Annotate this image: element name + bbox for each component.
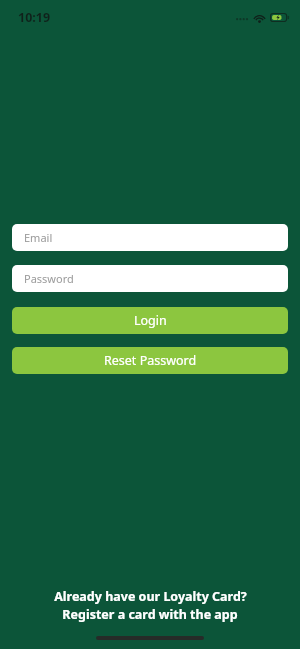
staticText: Email bbox=[24, 230, 53, 245]
button[interactable]: Reset Password bbox=[12, 347, 288, 374]
button[interactable]: Email bbox=[12, 224, 288, 251]
staticText: Login bbox=[134, 312, 167, 329]
staticText: 10:19 bbox=[18, 9, 51, 26]
staticText: Already have our Loyalty Card? bbox=[54, 588, 247, 605]
button[interactable]: Password bbox=[12, 265, 288, 292]
staticText: Password bbox=[24, 271, 74, 286]
button[interactable]: Login bbox=[12, 307, 288, 334]
staticText: Register a card with the app bbox=[62, 606, 238, 623]
button[interactable]: Already have our Loyalty Card? bbox=[0, 588, 300, 623]
staticText: Reset Password bbox=[104, 352, 197, 369]
